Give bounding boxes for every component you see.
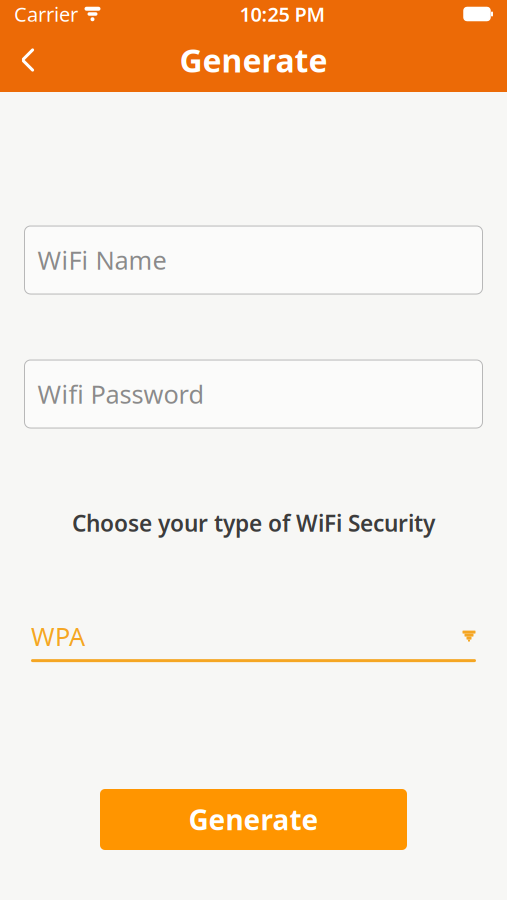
button[interactable]: Generate [100,789,407,850]
staticText: Generate [179,39,327,81]
staticText: Carrier [14,1,78,27]
button[interactable]: WiFi Name [24,226,482,294]
button[interactable]: Back [0,28,56,92]
staticText: WiFi Name [37,243,166,277]
staticText: Wifi Password [37,377,204,411]
staticText: Choose your type of WiFi Security [72,508,435,538]
button[interactable]: WiFi security type: WPA [31,621,476,662]
button[interactable]: Wifi Password [24,360,482,428]
staticText: Generate [188,801,318,838]
staticText: 10:25 PM [239,1,325,27]
staticText: WPA [31,619,85,653]
